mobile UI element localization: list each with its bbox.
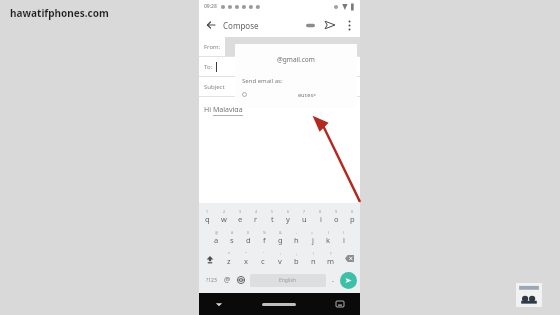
button[interactable]: 8 xyxy=(312,206,328,227)
staticText: From: xyxy=(204,43,221,51)
staticText: 5 xyxy=(271,209,274,214)
staticText: @ xyxy=(215,230,219,235)
staticText: 9 xyxy=(335,209,338,214)
button[interactable]: English xyxy=(250,274,326,287)
staticText: - xyxy=(296,230,298,235)
button[interactable]: Backspace xyxy=(339,248,360,269)
button[interactable]: ( xyxy=(320,227,336,248)
button[interactable]: 3 xyxy=(232,206,248,227)
button[interactable]: ; xyxy=(288,248,305,269)
staticText: j xyxy=(312,235,314,245)
staticText: y xyxy=(286,214,290,224)
button[interactable]: @ xyxy=(208,227,224,248)
button[interactable]: 4 xyxy=(248,206,264,227)
staticText: % xyxy=(263,230,266,235)
staticText: + xyxy=(311,230,314,235)
staticText: ?123 xyxy=(206,277,217,284)
button[interactable]: " xyxy=(237,248,254,269)
staticText: n xyxy=(311,256,316,266)
button[interactable]: More options xyxy=(340,16,358,34)
button[interactable]: ? xyxy=(322,248,339,269)
staticText: 09:28 xyxy=(204,3,217,10)
staticText: hawatifphones.com xyxy=(10,6,109,20)
staticText: h xyxy=(294,235,299,245)
staticText: Hi xyxy=(204,105,213,115)
staticText: $ xyxy=(247,230,250,235)
staticText: ? xyxy=(330,251,332,256)
button[interactable]: # xyxy=(224,227,240,248)
button[interactable]: $ xyxy=(240,227,256,248)
button[interactable]: 7 xyxy=(296,206,312,227)
staticText: d xyxy=(246,235,251,245)
button[interactable]: : xyxy=(271,248,288,269)
button[interactable]: % xyxy=(256,227,272,248)
button[interactable]: 9 xyxy=(328,206,344,227)
staticText: 3 xyxy=(239,209,242,214)
staticText: # xyxy=(231,230,234,235)
button[interactable]: Switch keyboard xyxy=(320,293,360,315)
button[interactable]: From: xyxy=(199,37,360,57)
staticText: 7 xyxy=(303,209,306,214)
button[interactable]: . xyxy=(326,269,340,291)
staticText: ' xyxy=(263,251,264,256)
staticText: * xyxy=(228,251,230,256)
staticText: @gmail.com xyxy=(277,55,315,64)
button[interactable]: ) xyxy=(336,227,352,248)
staticText: g xyxy=(278,235,283,245)
button[interactable]: Send xyxy=(320,15,340,35)
staticText: ; xyxy=(296,251,297,256)
staticText: f xyxy=(263,235,266,245)
staticText: k xyxy=(326,235,331,245)
button[interactable]: 0 xyxy=(344,206,360,227)
staticText: @ xyxy=(224,275,231,285)
button[interactable]: ! xyxy=(305,248,322,269)
button[interactable]: To: xyxy=(199,57,360,77)
button[interactable]: At symbol xyxy=(220,269,234,291)
button[interactable]: Attach file xyxy=(300,15,320,35)
staticText: 6 xyxy=(287,209,290,214)
staticText: v xyxy=(278,256,282,266)
staticText: 0 xyxy=(351,209,354,214)
button[interactable]: ' xyxy=(254,248,271,269)
staticText: r xyxy=(254,214,258,224)
staticText: p xyxy=(350,214,355,224)
staticText: e xyxy=(238,214,243,224)
staticText: 4 xyxy=(255,209,258,214)
staticText: ) xyxy=(343,230,345,235)
button[interactable]: & xyxy=(272,227,288,248)
button[interactable]: 2 xyxy=(216,206,232,227)
staticText: a xyxy=(214,235,219,245)
button[interactable]: ?123 xyxy=(202,269,220,291)
staticText: To: xyxy=(204,63,213,71)
staticText: o xyxy=(334,214,339,224)
button[interactable]: 1 xyxy=(199,206,216,227)
button[interactable]: Send message xyxy=(340,272,357,289)
staticText: t xyxy=(271,214,274,224)
staticText: u xyxy=(302,214,307,224)
button[interactable]: + xyxy=(304,227,320,248)
button[interactable]: Home xyxy=(262,303,296,306)
staticText: Send email as: xyxy=(242,77,283,85)
staticText: " xyxy=(245,251,247,256)
staticText: 8 xyxy=(319,209,322,214)
button[interactable]: * xyxy=(220,248,237,269)
staticText: Malavida xyxy=(213,105,243,115)
staticText: s xyxy=(230,235,234,245)
button[interactable]: Subject xyxy=(199,77,360,97)
button[interactable]: 5 xyxy=(264,206,280,227)
button[interactable]: Shift xyxy=(199,248,220,269)
staticText: b xyxy=(294,256,299,266)
button[interactable]: Change language xyxy=(234,269,248,291)
staticText: x xyxy=(244,256,248,266)
staticText: eur.es> xyxy=(298,91,317,98)
button[interactable]: eur.es> xyxy=(242,91,347,98)
button[interactable]: Hide keyboard xyxy=(199,293,239,315)
button[interactable]: Back xyxy=(199,13,223,37)
button[interactable]: @gmail.com xyxy=(235,44,357,108)
staticText: Subject xyxy=(204,83,225,91)
staticText: English xyxy=(279,277,297,284)
button[interactable]: 6 xyxy=(280,206,296,227)
button[interactable]: - xyxy=(288,227,304,248)
staticText: c xyxy=(261,256,265,266)
staticText: m xyxy=(327,256,335,266)
